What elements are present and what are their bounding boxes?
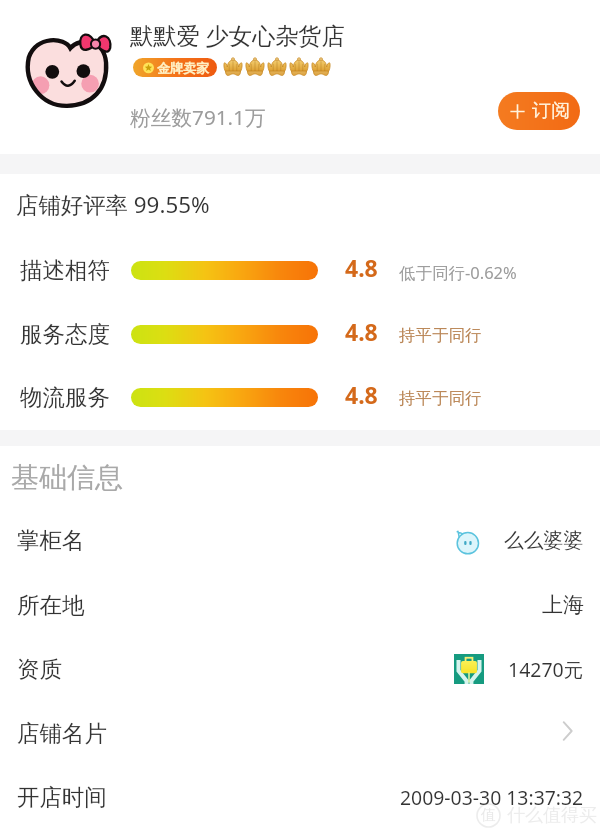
staticText: 持平于同行 [399,325,482,346]
staticText: 订阅 [532,99,570,123]
staticText: 4.8 [345,316,378,347]
staticText: 4.8 [345,252,378,283]
button[interactable]: 所在地 [0,579,600,631]
staticText: 粉丝数791.1万 [130,103,266,131]
button[interactable]: 开店时间 [0,771,600,823]
staticText: 持平于同行 [399,388,482,409]
staticText: 什么值得买 [507,804,597,827]
button[interactable]: 订阅 [498,92,580,130]
staticText: 店铺名片 [17,719,107,747]
staticText: 基础信息 [11,460,123,495]
staticText: 4.8 [345,379,378,410]
staticText: 2009-03-30 13:37:32 [400,784,584,810]
other: 查看店铺名片 [558,720,584,746]
staticText: 所在地 [17,591,85,619]
staticText: 掌柜名 [17,526,85,554]
staticText: 么么婆婆 [504,528,584,553]
staticText: 低于同行-0.62% [399,261,517,284]
staticText: 开店时间 [17,783,107,811]
staticText: 14270元 [508,656,584,683]
button[interactable]: 店铺头像 [14,21,120,119]
staticText: 上海 [542,592,584,618]
button[interactable]: 店铺名片 [0,707,600,759]
staticText: 物流服务 [20,383,110,411]
button[interactable]: 资质 [0,643,600,695]
staticText: 资质 [17,655,62,683]
staticText: 店铺好评率 99.55% [16,189,210,220]
staticText: 金牌卖家 [157,60,209,76]
staticText: 值 [481,806,496,825]
button[interactable]: 默默爱 少女心杂货店 [130,19,345,51]
staticText: 描述相符 [20,256,110,284]
staticText: 默默爱 少女心杂货店 [130,19,345,51]
button[interactable]: 金牌卖家 [133,58,217,77]
button[interactable]: 掌柜名 [0,514,600,566]
staticText: 服务态度 [20,320,110,348]
